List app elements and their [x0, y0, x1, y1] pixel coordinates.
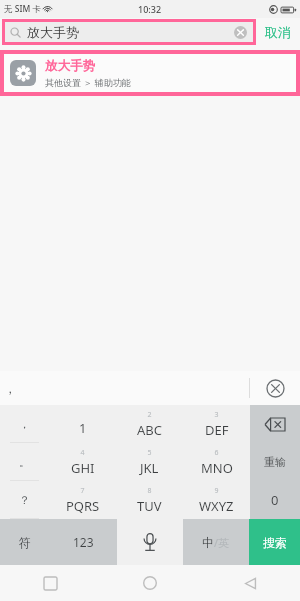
staticText: 中 [202, 535, 214, 550]
staticText: ， [4, 381, 16, 396]
staticText: 5 [147, 448, 152, 458]
other: Voice input [141, 531, 159, 553]
staticText: 123 [73, 534, 94, 550]
staticText: 无 SIM 卡 [4, 3, 41, 15]
staticText: 放大手势 [45, 58, 95, 74]
button[interactable]: 重输 [250, 443, 300, 481]
staticText: 符 [19, 535, 31, 550]
staticText: 其他设置 ＞ 辅助功能 [45, 76, 131, 88]
button[interactable]: 6 [183, 443, 250, 481]
staticText: 。 [19, 455, 30, 469]
staticText: ABC [137, 421, 162, 439]
button[interactable]: Recent apps [0, 565, 100, 601]
button[interactable]: 搜索 [249, 519, 300, 565]
button[interactable]: 取消 [256, 18, 300, 46]
staticText: 4 [80, 448, 85, 458]
button[interactable]: Voice input [117, 519, 183, 565]
button[interactable]: 9 [183, 481, 250, 519]
button[interactable]: 4 [49, 443, 116, 481]
button[interactable]: 符 [0, 519, 49, 565]
button[interactable]: 8 [116, 481, 183, 519]
staticText: JKL [140, 459, 159, 477]
staticText: 取消 [265, 24, 291, 40]
button[interactable]: 0 [250, 481, 300, 519]
staticText: 搜索 [263, 535, 287, 550]
button[interactable]: Home [100, 565, 200, 601]
staticText: 0 [271, 491, 279, 509]
staticText: 10:32 [138, 3, 162, 15]
button[interactable]: 3 [183, 405, 250, 443]
other: Delete [265, 418, 285, 431]
staticText: MNO [201, 459, 233, 477]
staticText: WXYZ [199, 497, 234, 515]
button[interactable]: Back [200, 565, 300, 601]
staticText: 9 [214, 486, 219, 496]
button[interactable]: 123 [49, 519, 117, 565]
staticText: PQRS [66, 497, 100, 515]
staticText: ， [19, 417, 30, 431]
staticText: /英 [214, 535, 230, 550]
button[interactable]: Clear text [229, 22, 251, 42]
staticText: 重输 [264, 455, 286, 469]
staticText: GHI [71, 459, 95, 477]
staticText: 1 [79, 419, 87, 437]
button[interactable]: 1 [49, 405, 116, 443]
button[interactable]: Delete [250, 405, 300, 443]
staticText: 8 [147, 486, 152, 496]
staticText: 2 [147, 410, 152, 420]
button[interactable]: ？ [0, 481, 49, 519]
staticText: ？ [19, 493, 30, 507]
staticText: 放大手势 [27, 24, 79, 40]
button[interactable]: 2 [116, 405, 183, 443]
button[interactable]: 。 [0, 443, 49, 481]
button[interactable]: 放大手势 [5, 22, 253, 42]
button[interactable]: ， [0, 405, 49, 443]
button[interactable]: 放大手势 [4, 54, 296, 92]
staticText: TUV [137, 497, 162, 515]
button[interactable]: Close keyboard [250, 371, 300, 405]
button[interactable]: 7 [49, 481, 116, 519]
button[interactable]: 中 [183, 519, 249, 565]
staticText: 3 [214, 410, 219, 420]
button[interactable]: 5 [116, 443, 183, 481]
staticText: 6 [214, 448, 219, 458]
staticText: DEF [205, 421, 229, 439]
staticText: 7 [80, 486, 85, 496]
